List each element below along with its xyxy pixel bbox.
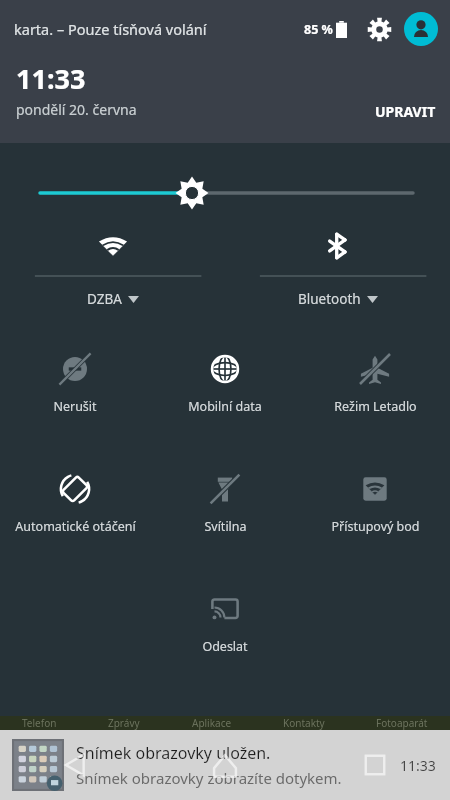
staticText: Zprávy — [108, 716, 140, 730]
staticText: Fotoaparát — [376, 716, 428, 730]
staticText: DZBA — [87, 290, 122, 308]
staticText: Přístupový bod — [331, 518, 420, 535]
button[interactable]: Automatické otáčení — [0, 448, 150, 568]
button[interactable]: Settings — [362, 12, 396, 46]
staticText: Automatické otáčení — [15, 518, 136, 535]
button[interactable]: Home — [150, 730, 300, 800]
staticText: Režim Letadlo — [334, 398, 417, 415]
staticText: Bluetooth — [298, 290, 361, 308]
staticText: Snímek obrazovky zobrazíte dotykem. — [76, 768, 342, 788]
staticText: Svítilna — [204, 518, 247, 535]
button[interactable]: Bluetooth — [225, 216, 450, 328]
button[interactable]: Svítilna — [150, 448, 300, 568]
button[interactable]: Wi-Fi — [0, 216, 225, 328]
staticText: Nerušit — [53, 398, 97, 415]
button[interactable]: Přístupový bod — [300, 448, 450, 568]
button[interactable]: Brightness — [0, 143, 450, 216]
staticText: Aplikace — [192, 716, 232, 730]
staticText: Kontakty — [283, 716, 325, 730]
button[interactable]: Mobilní data — [150, 328, 300, 448]
staticText: 85 % — [304, 21, 333, 38]
button[interactable]: Recents — [300, 730, 450, 800]
button[interactable]: UPRAVIT — [375, 102, 436, 121]
button[interactable]: Back — [0, 730, 150, 800]
staticText: Mobilní data — [188, 398, 262, 415]
button[interactable]: Odeslat — [150, 568, 300, 688]
staticText: Telefon — [22, 716, 57, 730]
staticText: 11:33 — [400, 756, 436, 775]
button[interactable]: Režim Letadlo — [300, 328, 450, 448]
staticText: Odeslat — [202, 638, 248, 655]
button[interactable]: Nerušit — [0, 328, 150, 448]
staticText: Snímek obrazovky uložen. — [76, 742, 271, 764]
staticText: 11:33 — [16, 60, 86, 97]
button[interactable]: User profile — [404, 12, 438, 46]
staticText: pondělí 20. června — [16, 100, 137, 119]
staticText: UPRAVIT — [375, 102, 436, 121]
staticText: karta. – Pouze tísňová volání — [14, 19, 207, 39]
